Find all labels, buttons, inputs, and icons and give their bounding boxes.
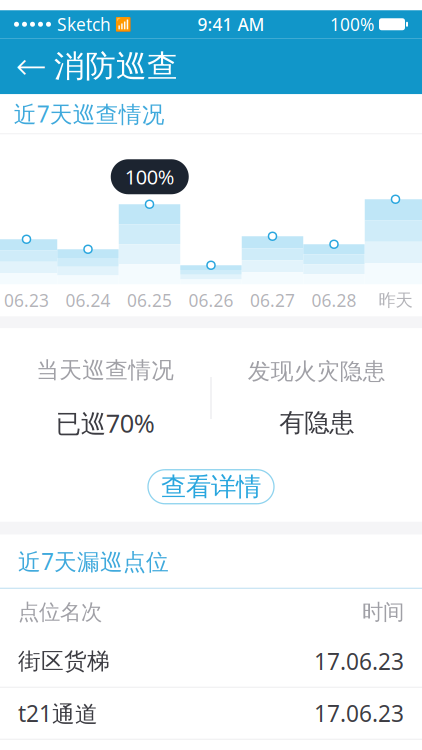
staticText: 当天巡查情况 xyxy=(36,356,174,384)
staticText: 近7天漏巡点位 xyxy=(18,546,169,576)
staticText: 17.06.23 xyxy=(314,698,404,728)
staticText: 06.24 xyxy=(65,289,110,312)
staticText: 17.06.23 xyxy=(314,646,404,676)
staticText: 消防巡查 xyxy=(54,47,178,85)
staticText: 100% xyxy=(125,163,175,190)
button[interactable]: t21通道 xyxy=(0,688,422,740)
staticText: 街区货梯 xyxy=(18,647,110,675)
staticText: 06.26 xyxy=(188,289,233,312)
staticText: 点位名次 xyxy=(18,599,102,625)
staticText: 100% xyxy=(330,13,374,36)
staticText: t21通道 xyxy=(18,698,98,728)
staticText: ← xyxy=(15,45,46,87)
staticText: 发现火灾隐患 xyxy=(248,357,386,385)
button[interactable]: 街区货梯 xyxy=(0,636,422,688)
staticText: 06.23 xyxy=(4,289,49,312)
staticText: Sketch xyxy=(57,13,111,36)
staticText: 有隐患 xyxy=(279,407,354,438)
staticText: 06.27 xyxy=(250,289,295,312)
staticText: 06.28 xyxy=(311,289,356,312)
button[interactable]: 查看详情 xyxy=(148,470,274,504)
staticText: 查看详情 xyxy=(161,471,261,502)
staticText: 时间 xyxy=(362,599,404,625)
staticText: 9:41 AM xyxy=(197,13,264,36)
button[interactable]: Back xyxy=(8,38,54,94)
staticText: 📶 xyxy=(115,17,132,32)
staticText: 已巡70% xyxy=(56,406,155,440)
staticText: 06.25 xyxy=(127,289,172,312)
staticText: 近7天巡查情况 xyxy=(14,99,165,129)
staticText: 昨天 xyxy=(378,290,412,311)
